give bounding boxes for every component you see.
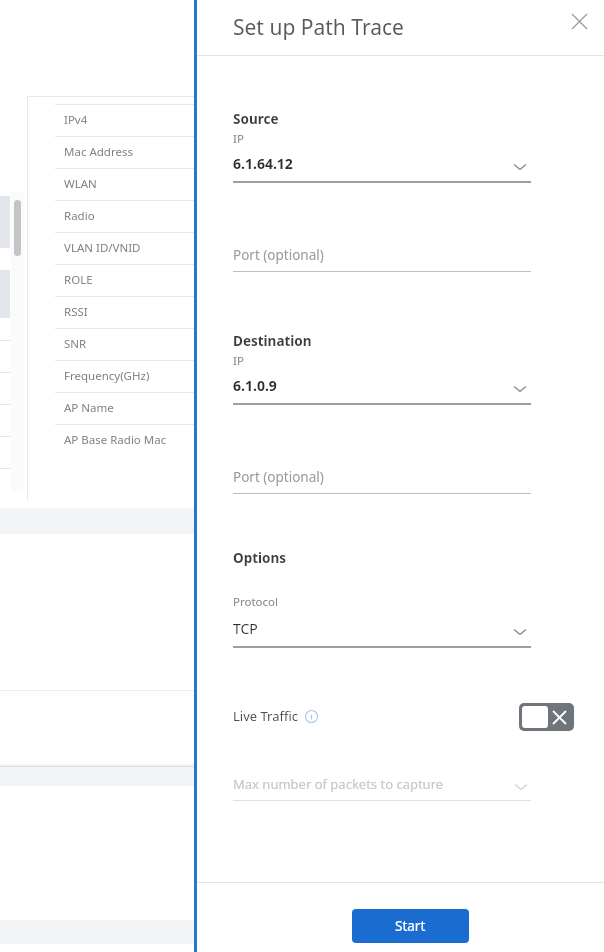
staticText: Max number of packets to capture — [233, 775, 444, 793]
button[interactable]: Source port — [233, 243, 531, 273]
button[interactable]: Destination IP — [233, 373, 531, 405]
staticText: Protocol — [233, 594, 278, 610]
staticText: ROLE — [64, 272, 93, 288]
button[interactable]: Close — [561, 3, 597, 39]
button[interactable]: Protocol — [233, 616, 531, 648]
staticText: RSSI — [64, 304, 88, 320]
staticText: IP — [233, 353, 244, 369]
button[interactable]: Source IP — [233, 151, 531, 183]
staticText: Mac Address — [64, 144, 133, 160]
staticText: 6.1.64.12 — [233, 154, 293, 173]
staticText: WLAN — [64, 176, 97, 192]
button[interactable]: Max number of packets to capture — [233, 770, 531, 802]
staticText: Start — [395, 917, 426, 935]
staticText: Port (optional) — [233, 468, 324, 486]
staticText: SNR — [64, 336, 87, 352]
staticText: IPv4 — [64, 112, 88, 128]
button[interactable]: Live Traffic toggle, off — [519, 703, 574, 731]
staticText: Port (optional) — [233, 246, 324, 264]
button[interactable]: Destination port — [233, 465, 531, 495]
staticText: Frequency(GHz) — [64, 368, 150, 384]
staticText: AP Name — [64, 400, 114, 416]
button[interactable]: Start — [352, 909, 469, 943]
staticText: Set up Path Trace — [233, 13, 404, 42]
staticText: Options — [233, 549, 287, 567]
staticText: VLAN ID/VNID — [64, 240, 141, 256]
staticText: Source — [233, 110, 279, 128]
staticText: TCP — [233, 619, 258, 638]
staticText: Radio — [64, 208, 95, 224]
staticText: IP — [233, 131, 244, 147]
staticText: Destination — [233, 332, 312, 350]
staticText: AP Base Radio Mac — [64, 432, 167, 448]
staticText: Live Traffic — [233, 707, 299, 725]
staticText: 6.1.0.9 — [233, 376, 277, 395]
